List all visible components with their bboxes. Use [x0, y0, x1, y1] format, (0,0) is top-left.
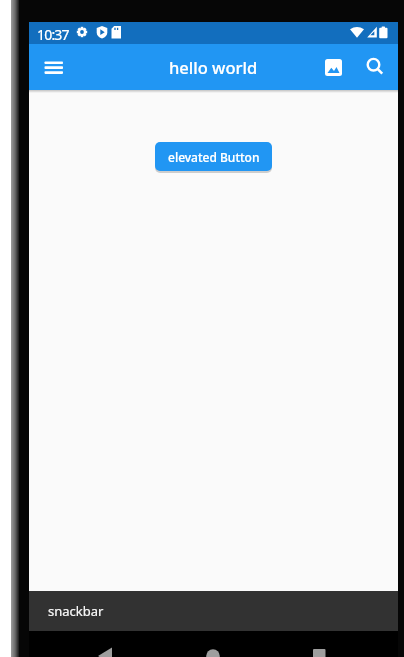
- button[interactable]: [360, 52, 390, 82]
- button[interactable]: [89, 631, 137, 657]
- button[interactable]: [35, 56, 73, 80]
- staticText: hello world: [169, 56, 258, 78]
- staticText: elevated Button: [168, 149, 260, 165]
- button[interactable]: elevated Button: [155, 142, 272, 171]
- button[interactable]: [189, 631, 237, 657]
- button[interactable]: snackbar: [29, 591, 398, 631]
- button[interactable]: [289, 631, 337, 657]
- staticText: 10:37: [37, 25, 69, 44]
- staticText: snackbar: [48, 602, 104, 620]
- button[interactable]: [320, 54, 347, 81]
